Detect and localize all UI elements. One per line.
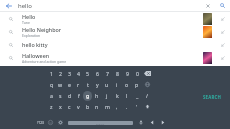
button[interactable]: 9 [122,68,132,79]
button[interactable]: Change language [142,79,152,90]
staticText: d [68,92,72,99]
button[interactable]: Use suggestion [216,51,230,64]
button[interactable]: c [65,101,74,112]
staticText: c [68,103,71,110]
button[interactable]: e [65,79,74,90]
staticText: s [59,92,62,99]
button[interactable]: Search [214,0,230,11]
button[interactable]: k [112,90,122,101]
staticText: ?123 [37,121,44,125]
staticText: 3 [68,70,71,77]
staticText: ' [136,103,138,110]
button[interactable]: _ [132,90,142,101]
button[interactable]: t [83,79,92,90]
button[interactable]: 7 [102,68,112,79]
button[interactable]: i [112,79,122,90]
button[interactable]: 5 [83,68,92,79]
staticText: y [96,81,99,88]
button[interactable]: z [47,101,56,112]
button[interactable]: s [56,90,65,101]
staticText: _ [136,92,139,99]
staticText: f [78,92,80,99]
button[interactable]: Clear [201,0,214,11]
button[interactable]: Voice input [135,117,146,128]
button[interactable]: 2 [56,68,65,79]
staticText: Adventure and action game [22,59,67,64]
staticText: z [50,103,53,110]
staticText: m [105,103,110,110]
staticText: 9 [126,70,129,77]
staticText: 5 [86,70,89,77]
staticText: h [95,92,99,99]
button[interactable]: Space [68,117,133,128]
button[interactable]: f [74,90,83,101]
button[interactable]: Hello [0,12,230,25]
staticText: e [68,81,71,88]
staticText: 6 [96,70,99,77]
staticText: , [116,103,118,110]
button[interactable]: d [65,90,74,101]
button[interactable]: hello kitty [0,38,230,51]
button[interactable]: v [74,101,83,112]
button[interactable]: Settings [55,117,66,128]
staticText: v [77,103,80,110]
button[interactable]: Halloween [0,51,230,64]
staticText: x [59,103,62,110]
button[interactable]: Use suggestion [216,12,230,25]
button[interactable]: n [92,101,102,112]
button[interactable]: 3 [65,68,74,79]
button[interactable]: SEARCH [201,92,224,102]
staticText: a [50,92,53,99]
button[interactable]: u [102,79,112,90]
button[interactable]: . [122,101,132,112]
button[interactable]: p [132,79,142,90]
button[interactable]: w [56,79,65,90]
button[interactable]: Symbols [35,117,45,128]
staticText: / [146,92,148,99]
staticText: i [116,81,118,88]
button[interactable]: 0 [132,68,142,79]
button[interactable]: h [92,90,102,101]
staticText: Hello Neighbor [22,26,62,33]
button[interactable]: 1 [47,68,56,79]
button[interactable]: 4 [74,68,83,79]
staticText: SEARCH [203,94,222,100]
button[interactable]: m [102,101,112,112]
button[interactable]: Use suggestion [216,38,230,51]
button[interactable]: 6 [92,68,102,79]
button[interactable]: l [122,90,132,101]
staticText: l [126,92,128,99]
staticText: p [135,81,139,88]
staticText: q [50,81,54,88]
button[interactable]: j [102,90,112,101]
button[interactable]: b [83,101,92,112]
button[interactable]: Back [0,0,18,11]
button[interactable]: Hello Neighbor [0,25,230,38]
button[interactable]: r [74,79,83,90]
staticText: 0 [136,70,139,77]
button[interactable]: Next [157,117,168,128]
button[interactable]: g [83,90,92,101]
button[interactable]: Shift [142,101,152,112]
staticText: b [86,103,90,110]
button[interactable]: o [122,79,132,90]
button[interactable]: / [142,90,152,101]
staticText: 8 [116,70,119,77]
button[interactable]: ' [132,101,142,112]
button[interactable]: Use suggestion [216,25,230,38]
button[interactable]: 8 [112,68,122,79]
button[interactable]: Emoji [45,117,55,128]
button[interactable]: Previous [146,117,157,128]
button[interactable]: , [112,101,122,112]
staticText: 1 [50,70,53,77]
staticText: English [96,122,105,125]
staticText: 2 [59,70,62,77]
button[interactable]: q [47,79,56,90]
button[interactable]: a [47,90,56,101]
staticText: j [106,92,108,99]
button[interactable]: y [92,79,102,90]
button[interactable]: x [56,101,65,112]
staticText: hello [18,2,32,10]
button[interactable]: Backspace [142,68,152,79]
staticText: 4 [77,70,80,77]
